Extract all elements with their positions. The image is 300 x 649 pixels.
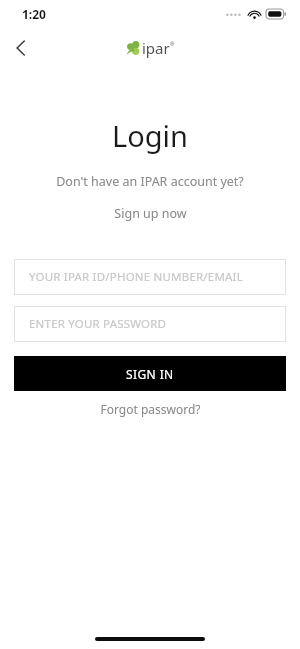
staticText: YOUR IPAR ID/PHONE NUMBER/EMAIL <box>29 269 243 285</box>
staticText: ® <box>170 41 175 48</box>
button[interactable]: Back <box>0 28 40 68</box>
staticText: SIGN IN <box>126 366 174 382</box>
staticText: Sign up now <box>114 205 187 222</box>
button[interactable]: YOUR IPAR ID/PHONE NUMBER/EMAIL <box>14 259 286 295</box>
staticText: ipar <box>142 38 170 58</box>
staticText: 1:20 <box>22 6 46 22</box>
button[interactable]: ENTER YOUR PASSWORD <box>14 306 286 342</box>
button[interactable]: Sign up now <box>0 205 300 222</box>
button[interactable]: SIGN IN <box>14 356 286 391</box>
staticText: Forgot password? <box>100 401 201 417</box>
staticText: Don't have an IPAR account yet? <box>0 173 300 190</box>
staticText: Login <box>0 116 300 155</box>
staticText: ENTER YOUR PASSWORD <box>29 316 167 332</box>
button[interactable]: Forgot password? <box>0 401 300 417</box>
